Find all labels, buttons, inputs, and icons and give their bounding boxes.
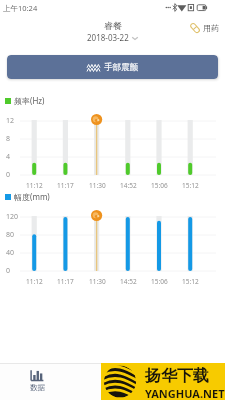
- button[interactable]: 用药: [189, 22, 219, 34]
- staticText: 幅度(mm): [14, 191, 50, 202]
- staticText: 手部震颤: [104, 62, 138, 73]
- staticText: 15:06: [151, 181, 168, 190]
- staticText: 数据: [30, 383, 45, 392]
- button[interactable]: 数据: [0, 364, 74, 400]
- staticText: 15:06: [151, 277, 168, 286]
- staticText: 睿餐: [104, 20, 122, 31]
- staticText: 扬华下载: [145, 366, 209, 386]
- staticText: 14:52: [120, 181, 137, 190]
- button[interactable]: 手部震颤: [7, 55, 218, 79]
- staticText: 11:30: [89, 181, 106, 190]
- staticText: 11:30: [89, 277, 106, 286]
- staticText: 80: [6, 230, 15, 240]
- staticText: 8: [6, 134, 11, 144]
- staticText: 40: [6, 248, 15, 258]
- staticText: YANGHUA.NET: [145, 386, 225, 400]
- staticText: 11:12: [26, 277, 43, 286]
- staticText: 11:12: [26, 181, 43, 190]
- staticText: 12: [6, 116, 15, 126]
- staticText: 14:52: [120, 277, 137, 286]
- staticText: 2018-03-22: [87, 32, 129, 43]
- staticText: 15:12: [182, 277, 199, 286]
- other: 用药: [189, 22, 201, 34]
- staticText: 频率(Hz): [14, 95, 45, 106]
- staticText: 0: [6, 266, 11, 276]
- staticText: 0: [6, 170, 11, 180]
- staticText: 用药: [203, 23, 219, 33]
- staticText: 上午10:24: [3, 3, 38, 13]
- staticText: 11:17: [57, 181, 74, 190]
- staticText: 11:17: [57, 277, 74, 286]
- staticText: 15:12: [182, 181, 199, 190]
- staticText: 120: [6, 212, 19, 222]
- staticText: 4: [6, 152, 11, 162]
